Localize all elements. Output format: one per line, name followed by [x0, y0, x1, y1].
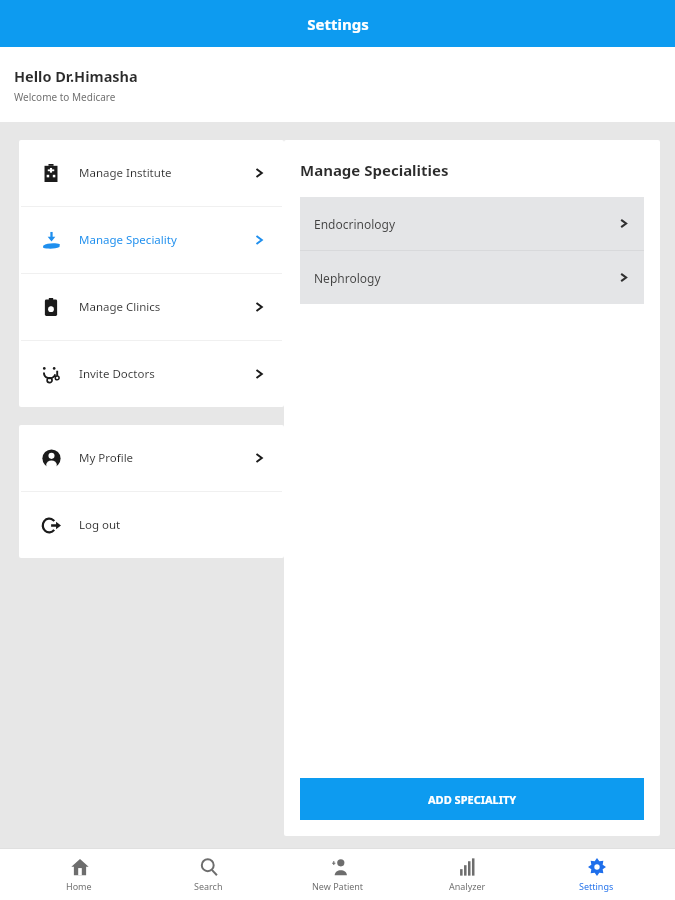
staticText: Manage Specialities	[300, 160, 449, 180]
other: Speciality	[42, 231, 61, 250]
staticText: Invite Doctors	[79, 366, 155, 382]
staticText: Nephrology	[314, 270, 381, 286]
button[interactable]: Search	[158, 848, 258, 900]
staticText: New Patient	[312, 880, 364, 892]
other: Analyzer	[459, 858, 477, 876]
staticText: Home	[66, 880, 92, 892]
staticText: Settings	[579, 880, 614, 892]
staticText: Search	[194, 880, 223, 892]
button[interactable]: Settings	[546, 848, 646, 900]
other: Search	[200, 858, 218, 876]
button[interactable]: Home	[29, 848, 129, 900]
other: Institute	[42, 164, 60, 182]
button[interactable]: Institute	[19, 140, 284, 206]
other: Settings	[588, 858, 606, 876]
staticText: Manage Clinics	[79, 299, 161, 315]
staticText: ADD SPECIALITY	[428, 792, 517, 807]
button[interactable]: New Patient	[288, 848, 388, 900]
button[interactable]: Endocrinology	[300, 197, 644, 250]
other: My Profile	[42, 449, 61, 468]
button[interactable]: ADD SPECIALITY	[300, 778, 644, 820]
staticText: Hello Dr.Himasha	[14, 66, 138, 86]
other: Clinics	[42, 298, 60, 316]
button[interactable]: Clinics	[19, 274, 284, 340]
staticText: Log out	[79, 517, 121, 533]
button[interactable]: Invite Doctors	[19, 341, 284, 407]
button[interactable]: My Profile	[19, 425, 284, 491]
other: New Patient	[330, 858, 348, 876]
staticText: Settings	[307, 14, 369, 34]
button[interactable]: Speciality	[19, 207, 284, 273]
staticText: Manage Speciality	[79, 232, 177, 248]
staticText: Analyzer	[449, 880, 486, 892]
button[interactable]: Nephrology	[300, 251, 644, 304]
staticText: Endocrinology	[314, 216, 396, 232]
staticText: Manage Institute	[79, 165, 172, 181]
button[interactable]: Analyzer	[417, 848, 517, 900]
other: Invite Doctors	[42, 365, 61, 384]
staticText: My Profile	[79, 450, 134, 466]
button[interactable]: Log out	[19, 492, 284, 558]
staticText: Welcome to Medicare	[14, 90, 116, 104]
other: Log out	[42, 516, 61, 535]
other: Home	[71, 858, 89, 876]
